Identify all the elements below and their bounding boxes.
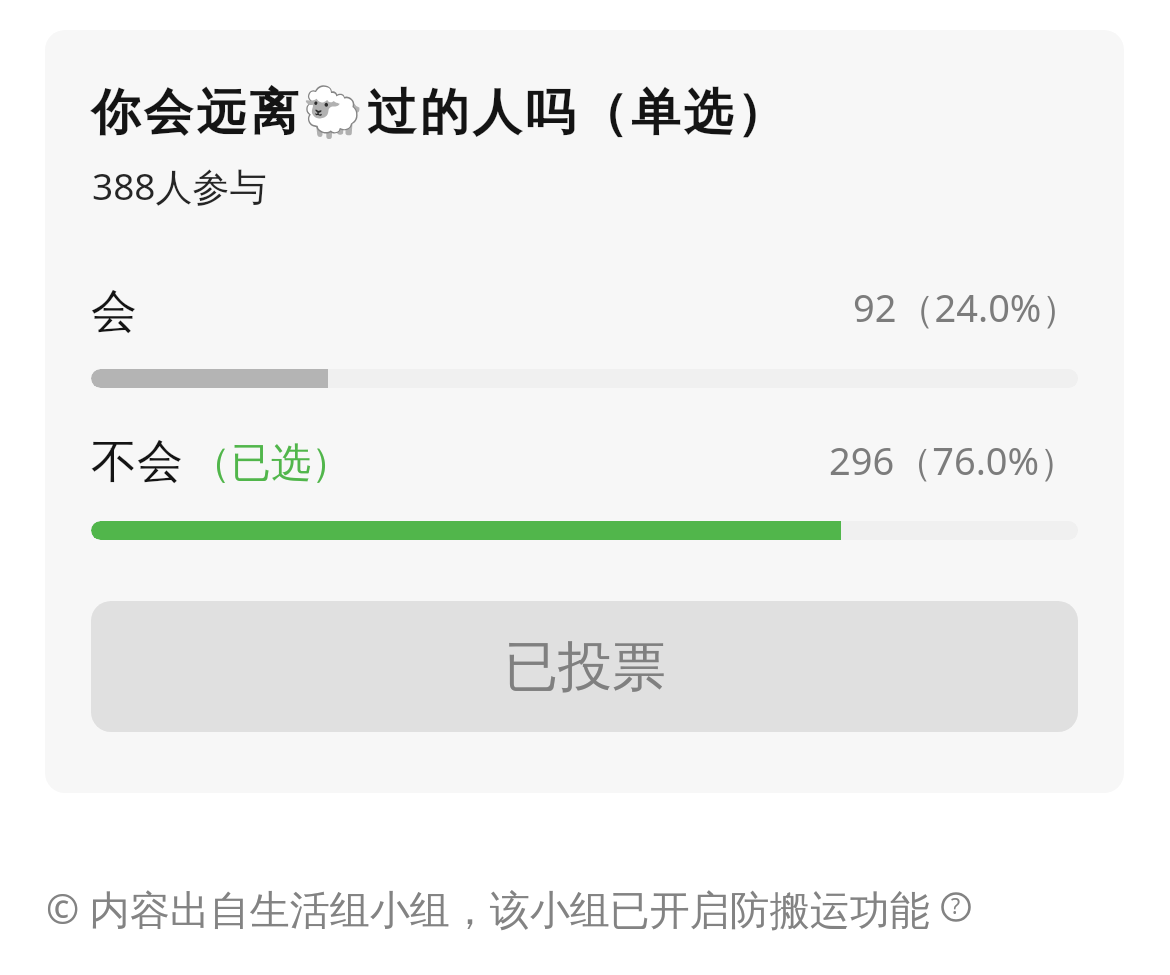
staticText: © 内容出自生活组小组，该小组已开启防搬运功能: [46, 881, 930, 936]
button[interactable]: Help: [941, 892, 971, 922]
staticText: 296（76.0%）: [829, 434, 1078, 486]
staticText: 会: [91, 283, 137, 341]
staticText: （已选）: [191, 437, 351, 487]
button[interactable]: 会: [91, 275, 1078, 388]
staticText: 已投票: [504, 633, 666, 701]
button[interactable]: 不会: [91, 425, 1078, 540]
staticText: 不会: [91, 433, 183, 491]
button[interactable]: 已投票: [91, 601, 1078, 732]
staticText: 388人参与: [92, 160, 267, 211]
staticText: 你会远离🐑过的人吗（单选）: [91, 82, 790, 144]
staticText: 92（24.0%）: [853, 281, 1080, 333]
staticText: ?: [951, 892, 961, 921]
